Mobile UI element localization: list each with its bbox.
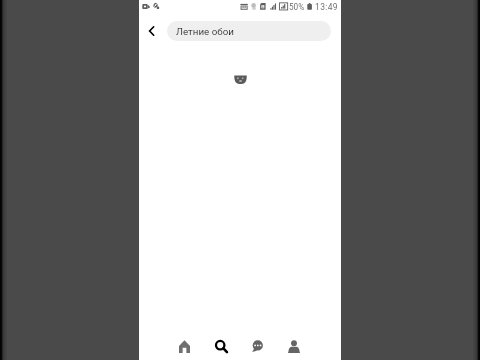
button[interactable]: Back — [140, 19, 164, 43]
button[interactable]: Home — [170, 332, 198, 360]
button[interactable]: Profile — [280, 332, 308, 360]
button[interactable]: Search — [207, 332, 235, 360]
staticText: 13:49 — [315, 2, 338, 12]
staticText: 50% — [289, 2, 305, 12]
button[interactable]: Messages — [243, 332, 271, 360]
button[interactable]: Летние обои — [167, 21, 331, 41]
staticText: Летние обои — [176, 26, 234, 37]
